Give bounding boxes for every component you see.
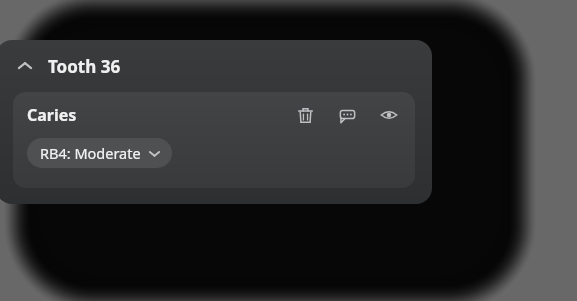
button[interactable]: Caries (13, 92, 415, 188)
staticText: Caries (27, 104, 77, 126)
staticText: Tooth 36 (48, 55, 121, 78)
other: Collapse (12, 53, 38, 79)
button[interactable]: RB4: Moderate (27, 138, 172, 168)
button[interactable]: Toggle visibility (377, 103, 401, 127)
staticText: RB4: Moderate (40, 143, 141, 163)
button[interactable]: Comment (335, 103, 359, 127)
button[interactable]: Collapse (0, 40, 432, 92)
button[interactable]: Delete (293, 103, 317, 127)
